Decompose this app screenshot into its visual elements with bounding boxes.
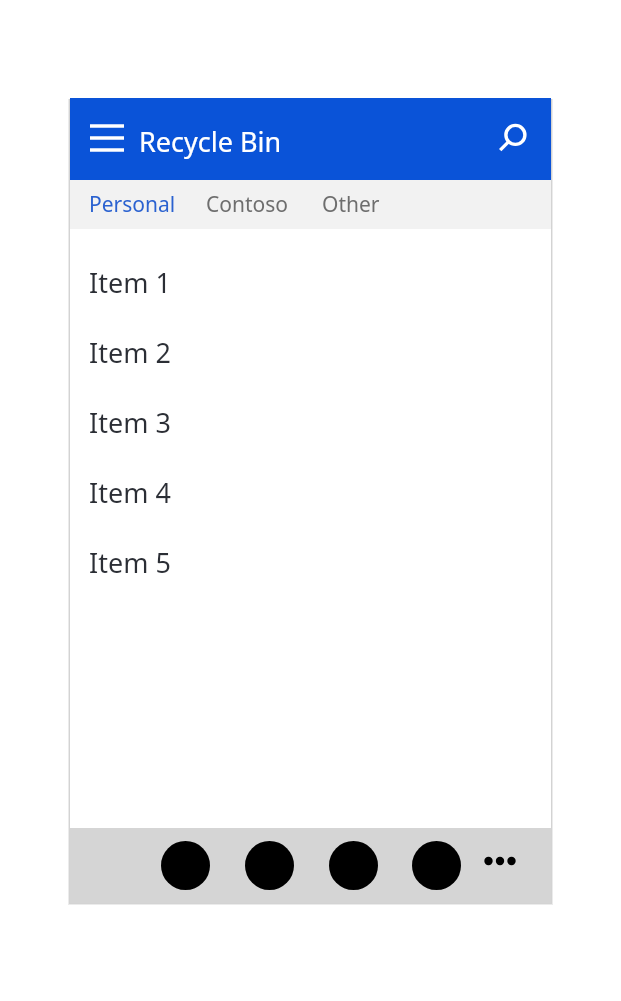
staticText: Item 1 <box>89 264 171 301</box>
button[interactable]: Menu <box>80 116 134 170</box>
button[interactable]: Item 2 <box>70 317 551 387</box>
button[interactable]: Item 5 <box>70 527 551 597</box>
button[interactable]: More options <box>475 836 525 886</box>
staticText: Other <box>322 190 380 219</box>
button[interactable]: Item 4 <box>70 457 551 527</box>
button[interactable]: Action 4 <box>409 838 463 892</box>
button[interactable]: Contoso <box>206 180 289 229</box>
button[interactable]: Search <box>485 112 539 166</box>
staticText: Contoso <box>206 190 289 219</box>
button[interactable]: Personal <box>89 180 176 229</box>
staticText: Item 3 <box>89 404 171 441</box>
staticText: Item 4 <box>89 474 171 511</box>
staticText: Item 2 <box>89 334 171 371</box>
staticText: Item 5 <box>89 544 171 581</box>
button[interactable]: Other <box>322 180 380 229</box>
button[interactable]: Action 2 <box>242 838 296 892</box>
button[interactable]: Action 3 <box>326 838 380 892</box>
staticText: Recycle Bin <box>139 123 282 160</box>
button[interactable]: Item 3 <box>70 387 551 457</box>
staticText: Personal <box>89 190 176 219</box>
button[interactable]: Action 1 <box>158 838 212 892</box>
button[interactable]: Item 1 <box>70 247 551 317</box>
